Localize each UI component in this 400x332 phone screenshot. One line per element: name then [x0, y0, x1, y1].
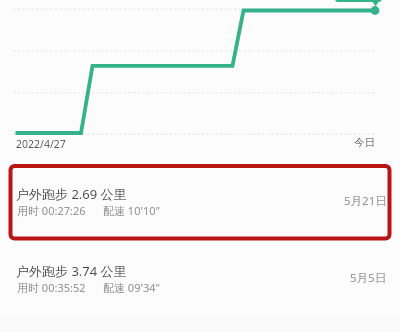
staticText: 配速 09'34" [103, 280, 160, 295]
staticText: 户外跑步 2.69 公里 [16, 185, 127, 203]
staticText: 用时 00:27:26 [17, 203, 86, 218]
staticText: 今日 [354, 136, 375, 149]
staticText: 5月21日 [344, 193, 387, 209]
staticText: 5月5日 [350, 270, 387, 286]
staticText: 配速 10'10" [103, 203, 160, 218]
button[interactable]: 户外跑步 3.74 公里 [0, 243, 400, 320]
staticText: 用时 00:35:52 [17, 280, 86, 295]
button[interactable]: Weekly distance chart [0, 0, 400, 160]
staticText: 2022/4/27 [16, 137, 66, 151]
button[interactable]: 户外跑步 2.69 公里 [0, 166, 400, 243]
staticText: 户外跑步 3.74 公里 [16, 262, 127, 280]
